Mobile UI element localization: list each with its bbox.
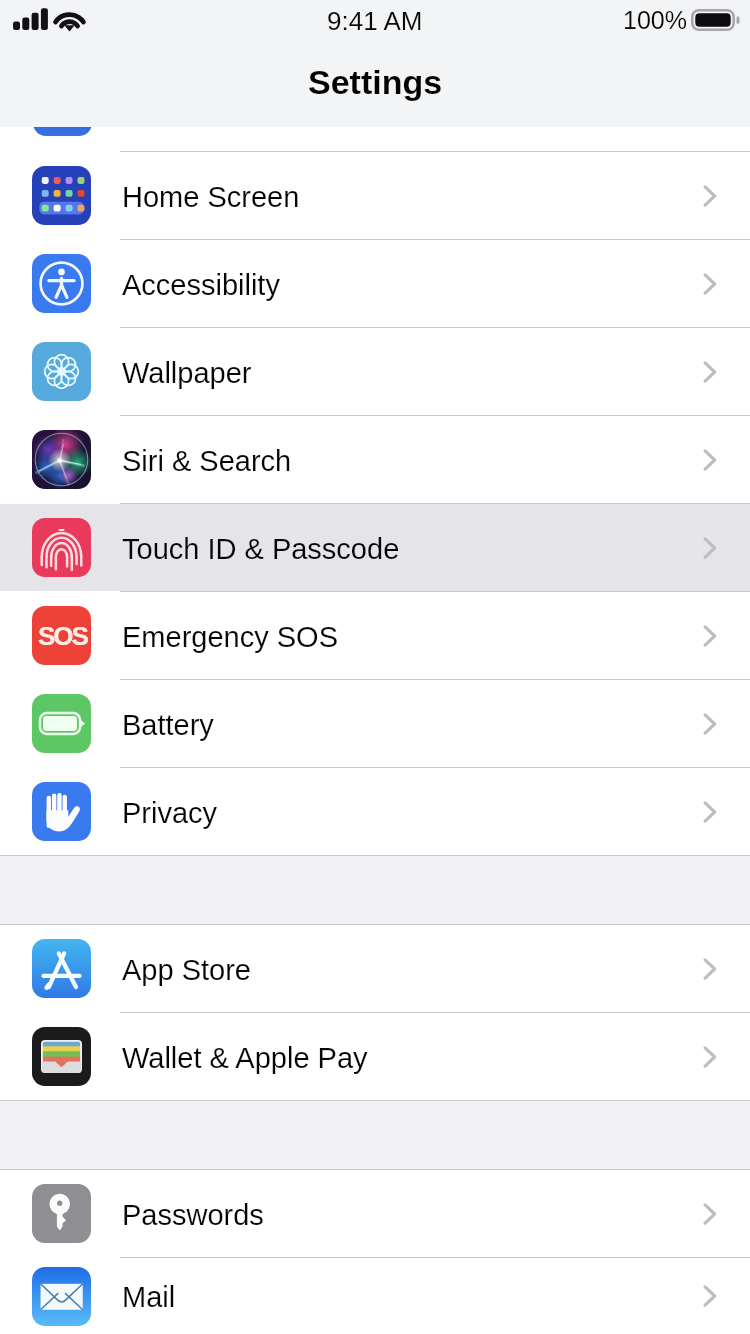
button[interactable]: App Store	[0, 925, 750, 1012]
staticText: Battery	[122, 709, 214, 741]
staticText: App Store	[122, 954, 251, 986]
button[interactable]: Privacy	[0, 768, 750, 855]
staticText: Wallet & Apple Pay	[122, 1042, 368, 1074]
button[interactable]: Wallet & Apple Pay	[0, 1013, 750, 1100]
staticText: Home Screen	[122, 181, 300, 213]
staticText: Siri & Search	[122, 445, 292, 477]
button[interactable]: Mail	[0, 1258, 750, 1334]
staticText: Touch ID & Passcode	[122, 533, 400, 565]
staticText: 9:41 AM	[327, 6, 423, 35]
button[interactable]: Passwords	[0, 1170, 750, 1257]
staticText: Privacy	[122, 797, 218, 829]
staticText: Wallpaper	[122, 357, 252, 389]
button[interactable]: Siri & Search	[0, 416, 750, 503]
button[interactable]: Wallpaper	[0, 328, 750, 415]
button[interactable]: Accessibility	[0, 240, 750, 327]
button[interactable]: Home Screen	[0, 152, 750, 239]
staticText: SOS	[38, 621, 87, 650]
button[interactable]: Battery	[0, 680, 750, 767]
staticText: 100%	[623, 6, 687, 34]
staticText: Passwords	[122, 1199, 264, 1231]
staticText: Settings	[308, 63, 443, 101]
button[interactable]: SOS	[0, 592, 750, 679]
staticText: Emergency SOS	[122, 621, 338, 653]
staticText: Accessibility	[122, 269, 280, 301]
button[interactable]: Touch ID & Passcode	[0, 504, 750, 591]
staticText: Mail	[122, 1281, 176, 1313]
